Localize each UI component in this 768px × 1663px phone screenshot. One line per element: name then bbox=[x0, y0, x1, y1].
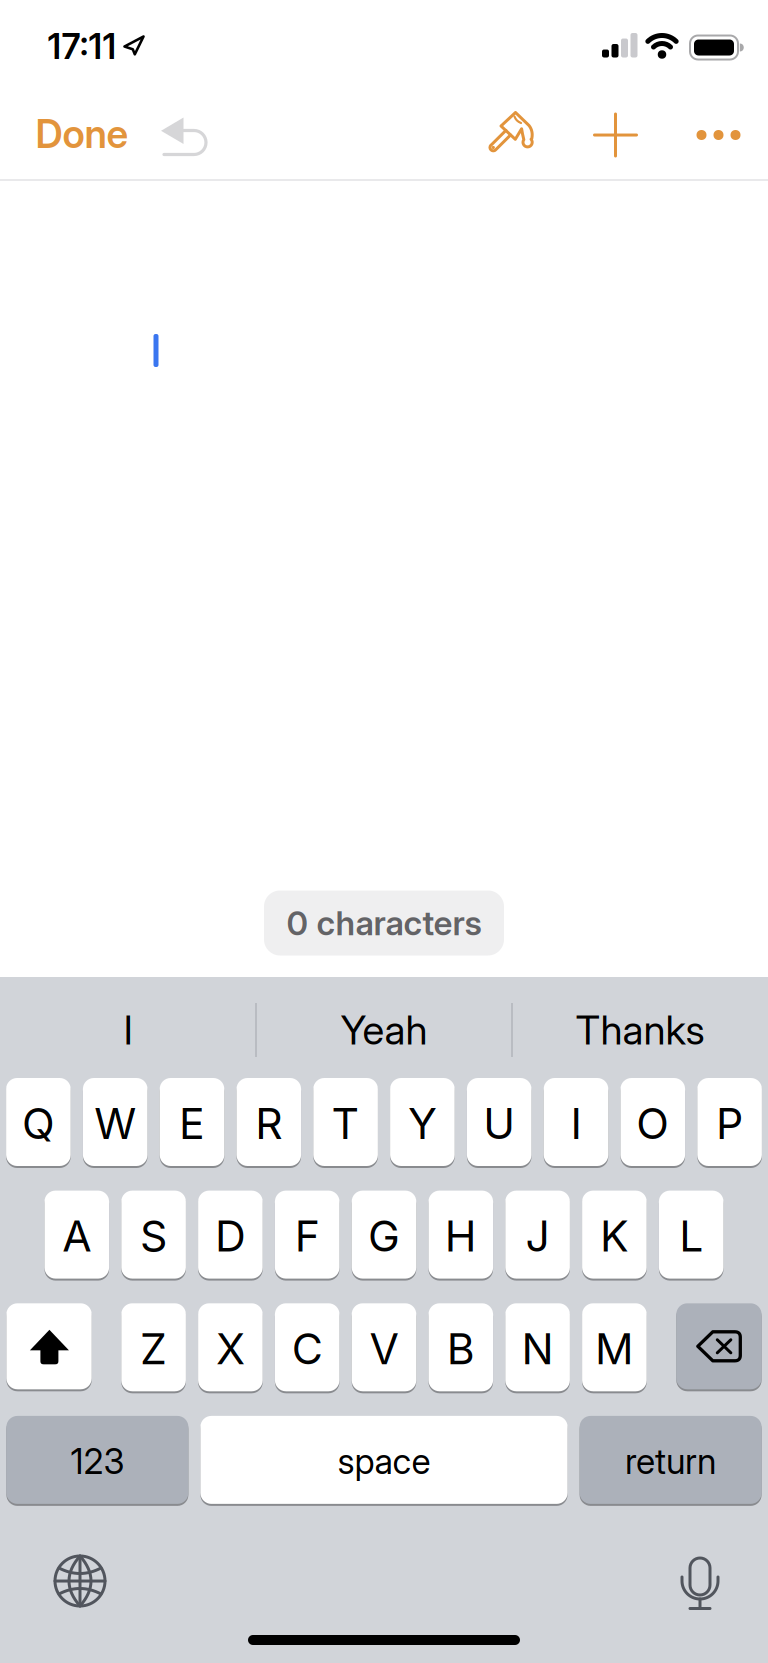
button[interactable]: N bbox=[505, 1303, 570, 1393]
button[interactable]: Format bbox=[483, 103, 543, 163]
staticText: V bbox=[369, 1324, 398, 1374]
button[interactable]: Add bbox=[590, 110, 640, 160]
staticText: N bbox=[522, 1324, 554, 1374]
staticText: L bbox=[679, 1211, 703, 1261]
staticText: G bbox=[368, 1211, 400, 1261]
staticText: R bbox=[255, 1098, 282, 1149]
button[interactable]: R bbox=[236, 1078, 301, 1168]
button[interactable]: Shift bbox=[6, 1303, 92, 1391]
button[interactable]: Yeah bbox=[259, 990, 509, 1070]
button[interactable]: I bbox=[3, 990, 253, 1070]
staticText: K bbox=[600, 1211, 629, 1261]
staticText: 123 bbox=[70, 1441, 124, 1482]
staticText: Q bbox=[22, 1098, 55, 1149]
button[interactable]: V bbox=[352, 1303, 416, 1393]
button[interactable]: Done bbox=[35, 111, 128, 157]
staticText: Yeah bbox=[340, 1006, 427, 1054]
button[interactable]: X bbox=[198, 1303, 263, 1393]
staticText: D bbox=[215, 1211, 246, 1261]
staticText: T bbox=[332, 1098, 360, 1149]
staticText: W bbox=[94, 1098, 136, 1149]
button[interactable]: O bbox=[620, 1078, 685, 1168]
button[interactable]: K bbox=[582, 1191, 647, 1281]
button[interactable]: W bbox=[83, 1078, 147, 1168]
button[interactable]: Z bbox=[121, 1303, 186, 1393]
staticText: space bbox=[337, 1441, 430, 1482]
button[interactable]: Undo bbox=[153, 106, 213, 166]
button[interactable]: Delete bbox=[676, 1303, 762, 1391]
staticText: M bbox=[595, 1324, 634, 1374]
button[interactable]: H bbox=[428, 1191, 493, 1281]
staticText: Done bbox=[35, 111, 128, 157]
staticText: P bbox=[716, 1098, 743, 1149]
staticText: Thanks bbox=[575, 1006, 704, 1054]
staticText: C bbox=[292, 1324, 323, 1374]
button[interactable]: More bbox=[693, 125, 743, 145]
staticText: U bbox=[483, 1098, 515, 1149]
staticText: O bbox=[636, 1098, 669, 1149]
button[interactable]: Y bbox=[390, 1078, 455, 1168]
button[interactable]: C bbox=[275, 1303, 339, 1393]
staticText: H bbox=[445, 1211, 477, 1261]
button[interactable]: D bbox=[198, 1191, 263, 1281]
button[interactable]: Q bbox=[6, 1078, 71, 1168]
staticText: 17:11 bbox=[47, 26, 116, 67]
button[interactable]: M bbox=[582, 1303, 647, 1393]
button[interactable]: U bbox=[467, 1078, 531, 1168]
button[interactable]: Dictate bbox=[670, 1552, 730, 1612]
button[interactable]: E bbox=[160, 1078, 224, 1168]
staticText: return bbox=[625, 1441, 716, 1482]
staticText: S bbox=[140, 1211, 167, 1261]
staticText: I bbox=[123, 1006, 132, 1054]
button[interactable]: Next keyboard bbox=[50, 1551, 110, 1611]
staticText: Z bbox=[140, 1324, 167, 1374]
staticText: I bbox=[570, 1098, 581, 1149]
button[interactable]: 123 bbox=[6, 1416, 188, 1506]
button[interactable]: G bbox=[352, 1191, 416, 1281]
button[interactable]: return bbox=[580, 1416, 762, 1506]
button[interactable]: L bbox=[659, 1191, 723, 1281]
staticText: A bbox=[62, 1211, 91, 1261]
button[interactable]: T bbox=[313, 1078, 378, 1168]
staticText: 0 characters bbox=[286, 903, 481, 943]
button[interactable]: F bbox=[275, 1191, 339, 1281]
staticText: E bbox=[179, 1098, 205, 1149]
button[interactable]: P bbox=[697, 1078, 762, 1168]
staticText: F bbox=[295, 1211, 320, 1261]
button[interactable]: space bbox=[200, 1416, 568, 1506]
button[interactable]: S bbox=[121, 1191, 186, 1281]
button[interactable]: J bbox=[505, 1191, 570, 1281]
staticText: X bbox=[216, 1324, 245, 1374]
button[interactable]: A bbox=[44, 1191, 109, 1281]
button[interactable]: I bbox=[544, 1078, 608, 1168]
staticText: J bbox=[526, 1211, 550, 1261]
staticText: Y bbox=[408, 1098, 437, 1149]
staticText: B bbox=[447, 1324, 475, 1374]
button[interactable]: Thanks bbox=[515, 990, 765, 1070]
button[interactable]: B bbox=[428, 1303, 493, 1393]
